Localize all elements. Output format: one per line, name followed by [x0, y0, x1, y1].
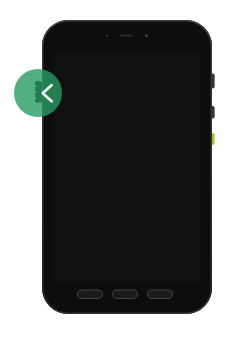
button[interactable] — [14, 69, 62, 117]
